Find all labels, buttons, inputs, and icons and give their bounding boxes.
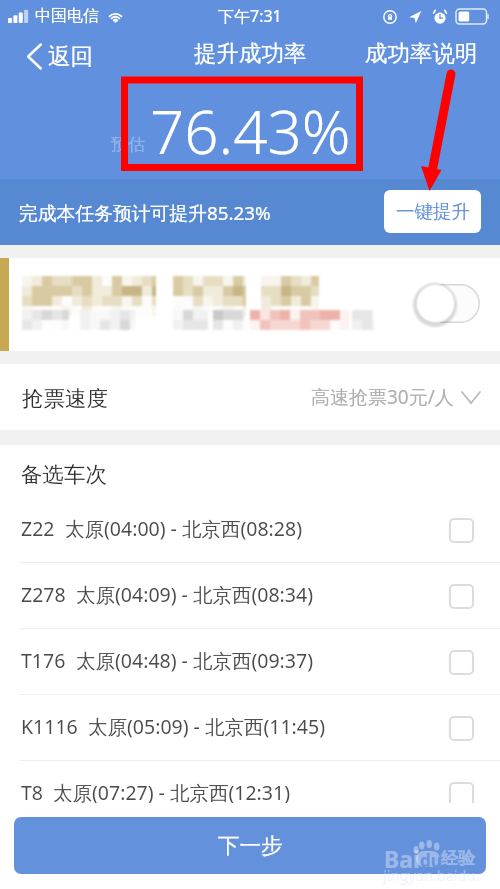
staticText: 中国电信 [35,6,99,26]
staticText: T176 [21,647,66,674]
staticText: 一键提升 [396,200,470,223]
staticText: Z278 [21,581,66,608]
staticText: 提升成功率 [194,39,307,67]
button[interactable]: T176 [0,629,500,695]
staticText: Z22 [21,515,55,542]
staticText: 太原(04:09) - 北京西(08:34) [76,581,314,608]
staticText: 预估 [111,134,145,155]
staticText: 太原(07:27) - 北京西(12:31) [53,779,291,806]
staticText: K1116 [21,713,78,740]
staticText: 太原(04:48) - 北京西(09:37) [76,647,314,674]
button[interactable]: T8 [0,761,500,827]
staticText: 76.43% [150,90,351,172]
button[interactable]: Z22 [0,497,500,563]
staticText: 返回 [48,42,93,70]
staticText: Bai [384,843,420,874]
staticText: 太原(05:09) - 北京西(11:45) [88,713,326,740]
staticText: 下午7:31 [218,5,282,27]
staticText: 抢票速度 [22,385,108,412]
button[interactable]: 返回 [0,40,105,68]
button[interactable]: 抢票速度 [0,364,500,430]
button[interactable]: 一键提升 [384,190,481,233]
staticText: 备选车次 [21,461,107,488]
button[interactable]: K1116 [0,695,500,761]
button[interactable]: 成功率说明 [365,40,500,68]
staticText: 高速抢票30元/人 [311,384,454,410]
staticText: jingyan.baidu.com [383,865,483,889]
staticText: 太原(04:00) - 北京西(08:28) [65,515,303,542]
button[interactable]: Z278 [0,563,500,629]
staticText: 完成本任务预计可提升85.23% [19,200,271,226]
staticText: 下一步 [218,832,283,859]
staticText: du [420,849,442,872]
button[interactable]: Toggle [416,284,480,323]
staticText: T8 [21,779,43,806]
button[interactable]: 下一步 [14,817,486,874]
staticText: 经验 [441,848,475,869]
